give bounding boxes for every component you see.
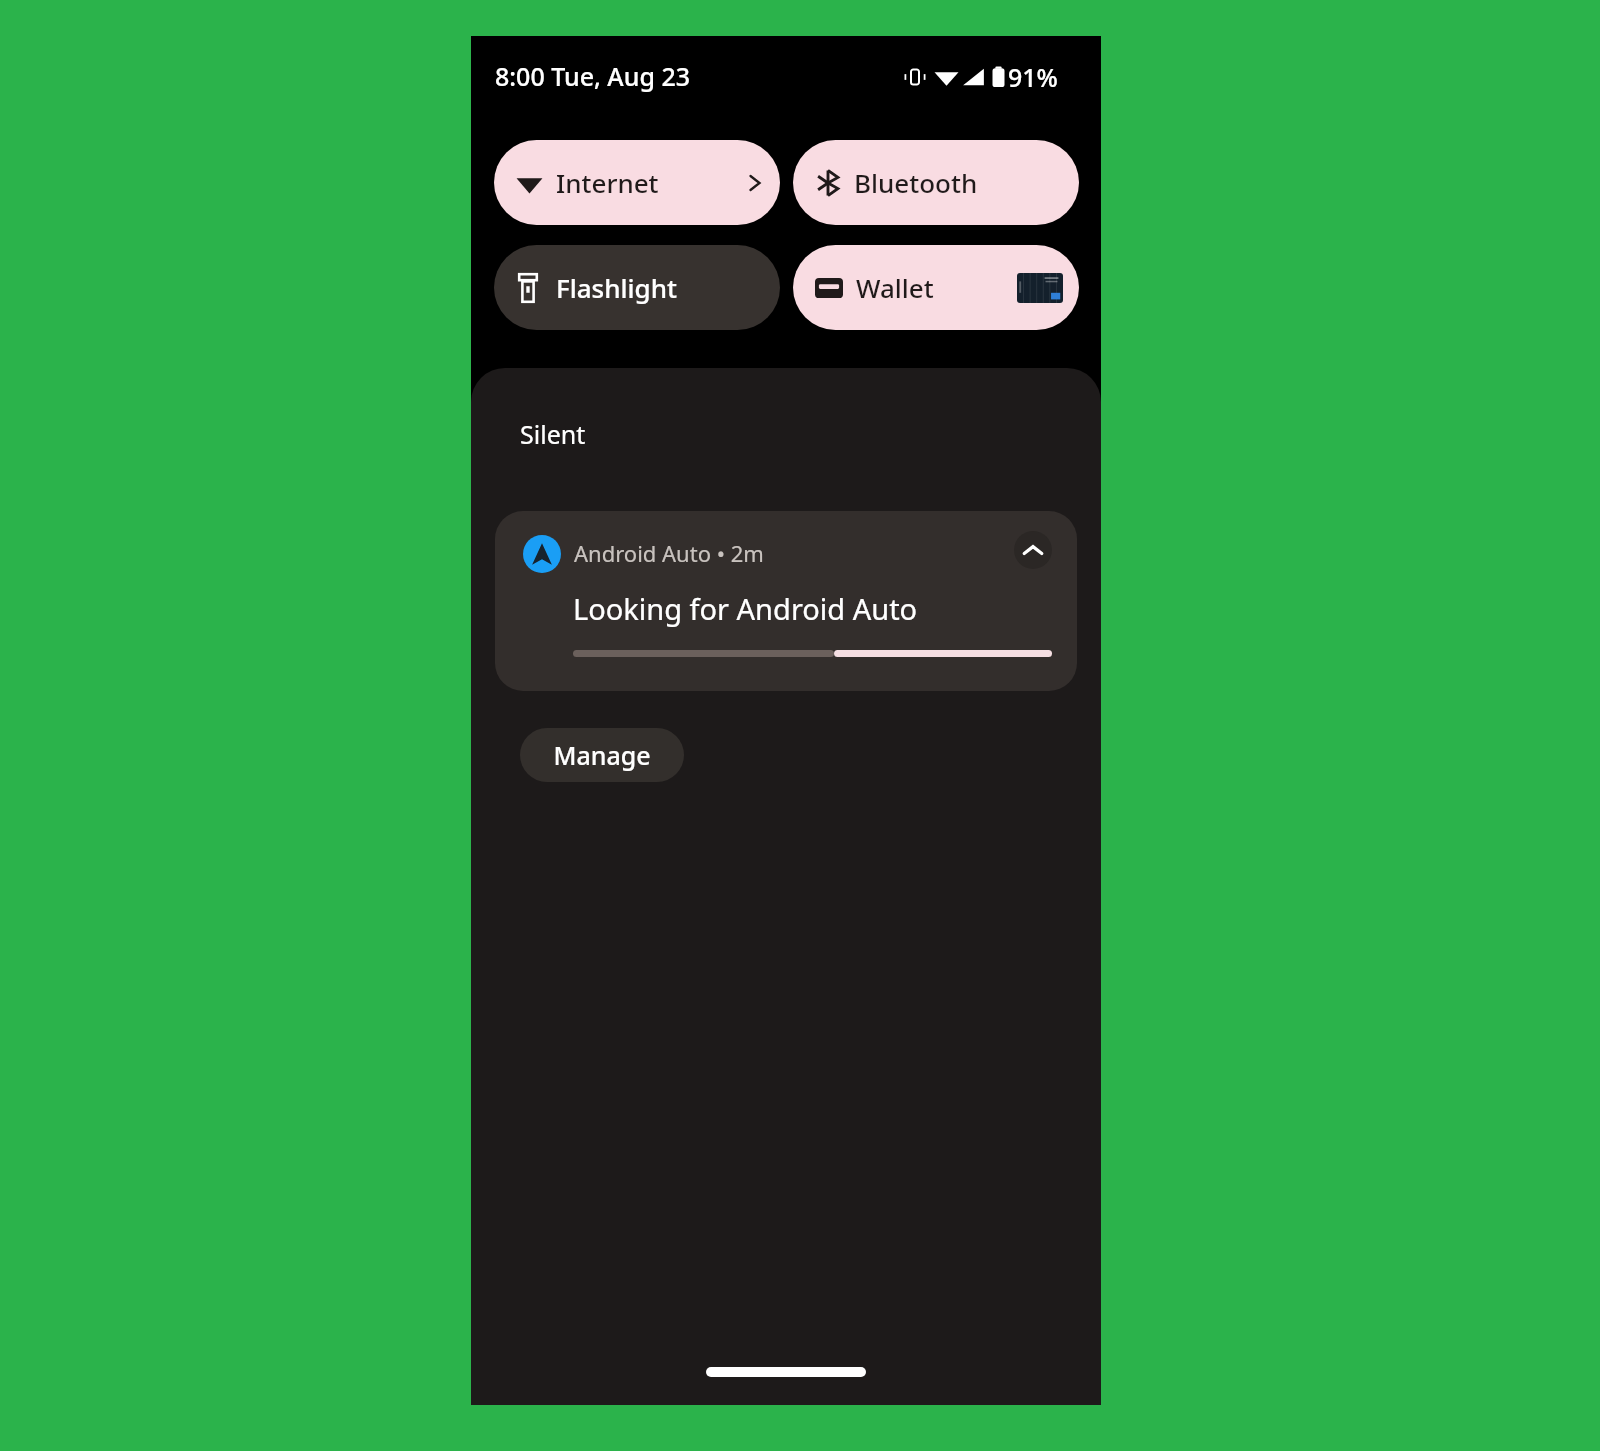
staticText: 91% — [1008, 60, 1058, 94]
button[interactable]: Manage — [520, 728, 684, 782]
staticText: Looking for Android Auto — [573, 589, 918, 628]
button[interactable]: Flashlight — [494, 245, 780, 330]
button[interactable]: Collapse — [1014, 531, 1052, 569]
staticText: 8:00 Tue, Aug 23 — [495, 59, 691, 93]
button[interactable]: Android Auto • 2m — [495, 511, 1077, 691]
staticText: Manage — [553, 738, 651, 772]
staticText: Flashlight — [556, 270, 677, 305]
button[interactable]: Bluetooth — [793, 140, 1079, 225]
staticText: Silent — [520, 417, 586, 451]
staticText: Wallet — [856, 270, 934, 305]
button[interactable]: Wallet — [793, 245, 1079, 330]
staticText: Bluetooth — [854, 165, 978, 200]
staticText: Android Auto • 2m — [574, 538, 764, 568]
button[interactable]: Internet — [494, 140, 780, 225]
staticText: Internet — [556, 165, 659, 200]
